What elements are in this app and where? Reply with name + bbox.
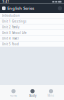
button[interactable]: Unit 5 Food — [0, 41, 64, 47]
staticText: Unit 2 Family — [2, 25, 19, 29]
button[interactable]: Study — [27, 87, 38, 97]
button[interactable]: Unit 3 School Life — [0, 30, 64, 36]
button[interactable]: More options — [58, 6, 62, 10]
button[interactable]: Unit 1 Greetings — [0, 19, 64, 24]
staticText: 9:41 — [2, 0, 9, 3]
button[interactable]: Introduction — [0, 13, 64, 19]
staticText: Introduction — [2, 14, 20, 17]
button[interactable]: App icon — [2, 6, 6, 10]
staticText: Unit 3 School Life — [2, 31, 27, 35]
staticText: Home — [9, 94, 17, 97]
staticText: Unit 1 Greetings — [2, 20, 26, 23]
staticText: Unit 4 Travel — [2, 37, 19, 40]
button[interactable]: Unit 2 Family — [0, 24, 64, 30]
staticText: English Series — [7, 6, 34, 11]
staticText: Study — [29, 94, 36, 97]
button[interactable]: Home — [7, 87, 19, 97]
staticText: Mine — [47, 94, 54, 97]
staticText: Unit 5 Food — [2, 42, 19, 46]
button[interactable]: Unit 4 Travel — [0, 36, 64, 41]
button[interactable]: Mine — [45, 87, 56, 97]
